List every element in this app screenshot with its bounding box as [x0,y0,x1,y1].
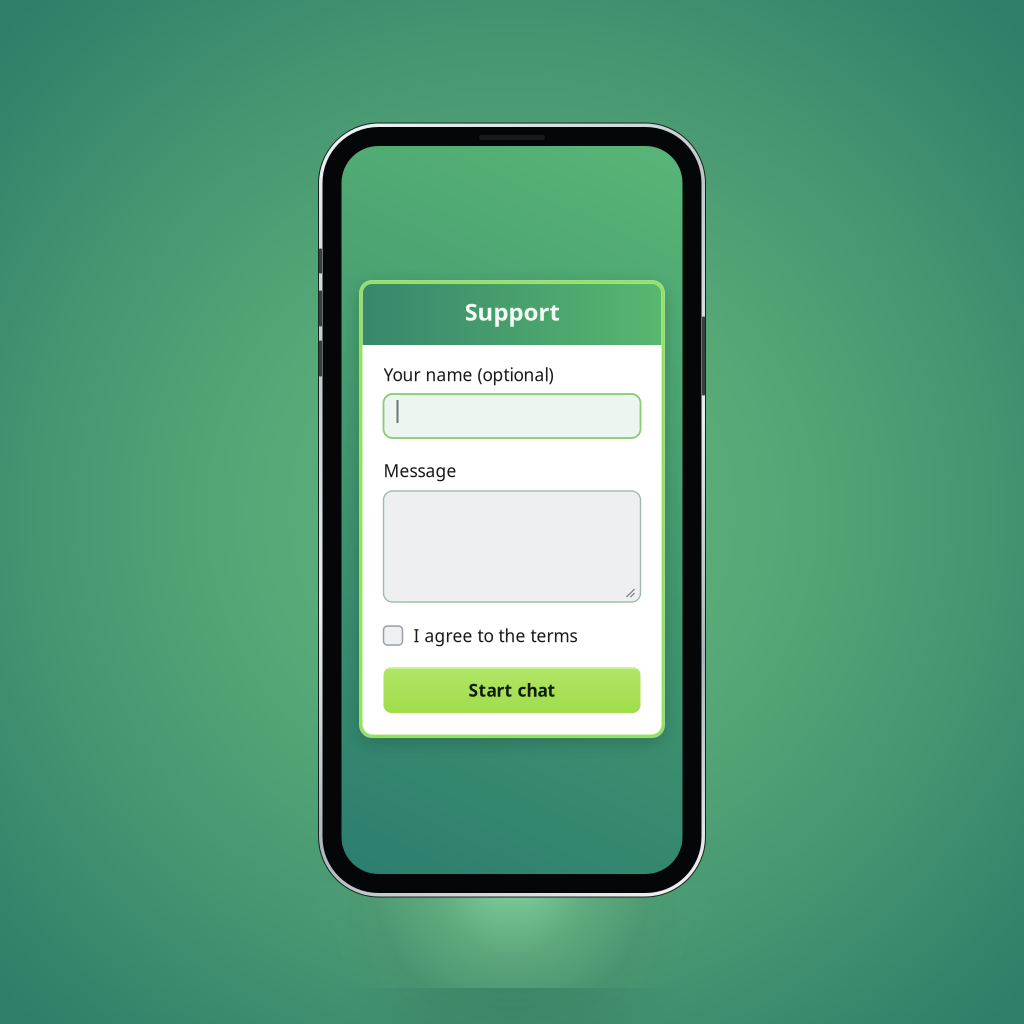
staticText: Support [464,296,559,327]
staticText: Your name (optional) [383,363,553,386]
staticText: Message [383,459,456,482]
button[interactable]: Your name text field [383,394,640,438]
button[interactable]: Start chat [383,667,640,713]
staticText: I agree to the terms [413,624,577,647]
button[interactable]: Message text area [383,491,640,602]
button[interactable]: I agree to the terms [383,624,640,647]
staticText: Start chat [468,678,555,701]
